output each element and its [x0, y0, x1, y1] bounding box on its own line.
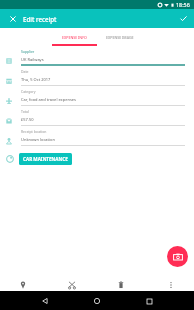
button[interactable]: Recents [142, 294, 156, 308]
button[interactable]: Back [38, 294, 52, 308]
staticText: Unknown location [21, 137, 55, 142]
button[interactable]: Location [15, 277, 31, 293]
staticText: UK Railways [21, 57, 44, 62]
button[interactable]: Delete [113, 277, 129, 293]
button[interactable]: Home [90, 294, 104, 308]
button[interactable]: EXPENSE IMAGE [97, 28, 142, 46]
staticText: Car, food and travel expenses [21, 97, 77, 102]
staticText: Total [21, 109, 29, 114]
button[interactable]: EXPENSE INFO [52, 28, 97, 46]
staticText: EXPENSE INFO [62, 35, 87, 40]
staticText: Edit receipt [23, 15, 57, 23]
button[interactable]: CAR MAINTENANCE [19, 153, 72, 165]
button[interactable]: More options [163, 277, 179, 293]
staticText: Category [21, 89, 36, 94]
button[interactable]: Total [0, 106, 194, 126]
staticText: Thu, 5 Oct 2017 [21, 77, 51, 82]
button[interactable]: Date [0, 66, 194, 86]
button[interactable]: Save [176, 11, 191, 26]
button[interactable]: Category [0, 86, 194, 106]
button[interactable]: Supplier [0, 46, 194, 66]
button[interactable]: Receipt location [0, 126, 194, 146]
staticText: Date [21, 69, 29, 74]
button[interactable]: Take photo [167, 246, 188, 267]
staticText: 18:56 [176, 1, 190, 8]
staticText: Receipt location [21, 129, 47, 134]
staticText: Supplier [21, 49, 35, 54]
staticText: £57.50 [21, 117, 34, 122]
staticText: CAR MAINTENANCE [23, 156, 68, 162]
staticText: EXPENSE IMAGE [106, 35, 134, 40]
button[interactable]: Crop [64, 277, 80, 293]
button[interactable]: Close [5, 11, 20, 26]
